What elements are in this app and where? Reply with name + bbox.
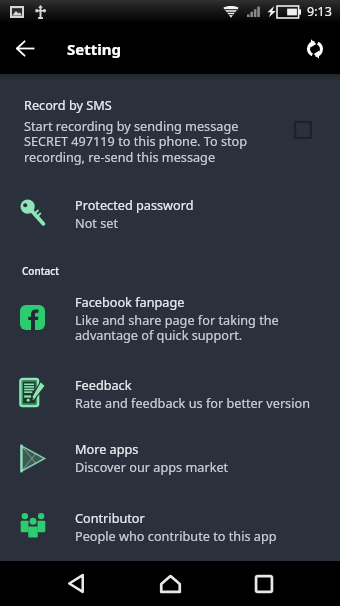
- button[interactable]: More apps: [0, 440, 340, 475]
- button[interactable]: Feedback: [0, 376, 340, 411]
- staticText: 9:13: [307, 3, 332, 20]
- button[interactable]: Facebook fanpage: [0, 293, 340, 344]
- staticText: Feedback: [75, 376, 132, 393]
- staticText: Like and share page for taking the advan…: [75, 311, 320, 344]
- staticText: Setting: [67, 39, 121, 59]
- staticText: Facebook fanpage: [75, 293, 185, 310]
- button[interactable]: Back: [0, 23, 51, 74]
- staticText: Contact: [22, 264, 60, 278]
- button[interactable]: Record by SMS: [0, 96, 340, 166]
- button[interactable]: Record by SMS toggle: [294, 121, 312, 139]
- staticText: More apps: [75, 440, 139, 457]
- staticText: Rate and feedback us for better version: [75, 394, 310, 411]
- staticText: Contributor: [75, 509, 145, 526]
- staticText: Record by SMS: [24, 96, 112, 113]
- button[interactable]: Home: [146, 561, 194, 606]
- button[interactable]: Contributor: [0, 509, 340, 544]
- button[interactable]: Back: [52, 561, 100, 606]
- staticText: Protected password: [75, 196, 194, 213]
- button[interactable]: Sync: [289, 23, 340, 74]
- button[interactable]: Recent apps: [240, 561, 288, 606]
- staticText: Not set: [75, 214, 119, 231]
- button[interactable]: Protected password: [0, 196, 340, 231]
- staticText: Start recording by sending message SECRE…: [24, 117, 264, 166]
- staticText: Discover our apps market: [75, 458, 229, 475]
- staticText: People who contribute to this app: [75, 527, 277, 544]
